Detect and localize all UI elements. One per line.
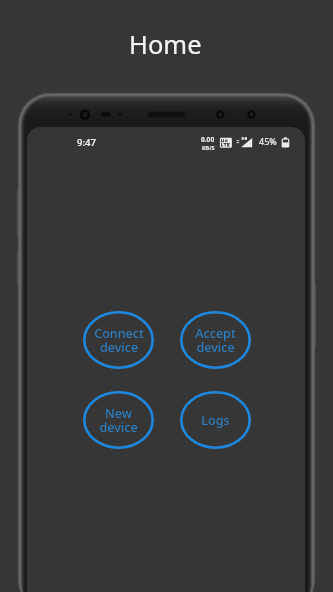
staticText: Logs (201, 412, 230, 429)
staticText: Accept device (195, 325, 236, 355)
staticText: KB/S (202, 144, 215, 151)
staticText: 9:47 (77, 136, 96, 149)
staticText: 45% (259, 135, 277, 147)
button[interactable]: Logs (180, 391, 251, 449)
staticText: New device (99, 405, 138, 435)
staticText: Home (129, 27, 202, 62)
staticText: 0.00 (201, 135, 215, 144)
button[interactable]: Accept device (180, 311, 251, 369)
staticText: Connect device (94, 325, 144, 355)
button[interactable]: New device (83, 391, 154, 449)
button[interactable]: Connect device (83, 311, 154, 369)
